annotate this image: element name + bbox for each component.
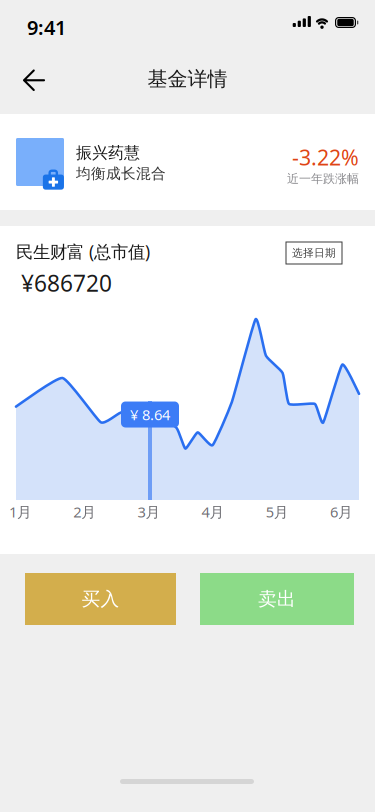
staticText: 卖出	[258, 587, 296, 610]
button[interactable]: 卖出	[200, 573, 354, 625]
staticText: 1月	[9, 502, 32, 521]
staticText: 4月	[202, 502, 225, 521]
staticText: 近一年跌涨幅	[287, 171, 359, 186]
staticText: -3.22%	[292, 143, 359, 171]
staticText: ¥686720	[21, 268, 112, 298]
staticText: 5月	[266, 502, 289, 521]
staticText: 3月	[137, 502, 160, 521]
staticText: 买入	[81, 587, 119, 610]
button[interactable]: Back	[13, 59, 55, 101]
staticText: 均衡成长混合	[76, 165, 166, 183]
button[interactable]: 买入	[25, 573, 176, 625]
staticText: 基金详情	[147, 67, 227, 91]
button[interactable]: 选择日期	[286, 242, 342, 264]
staticText: 民生财富 (总市值)	[16, 240, 150, 263]
staticText: 9:41	[27, 14, 66, 41]
staticText: 6月	[330, 502, 353, 521]
staticText: ¥ 8.64	[130, 405, 170, 424]
staticText: 2月	[73, 502, 96, 521]
staticText: 选择日期	[292, 246, 336, 259]
staticText: 振兴药慧	[76, 143, 140, 163]
